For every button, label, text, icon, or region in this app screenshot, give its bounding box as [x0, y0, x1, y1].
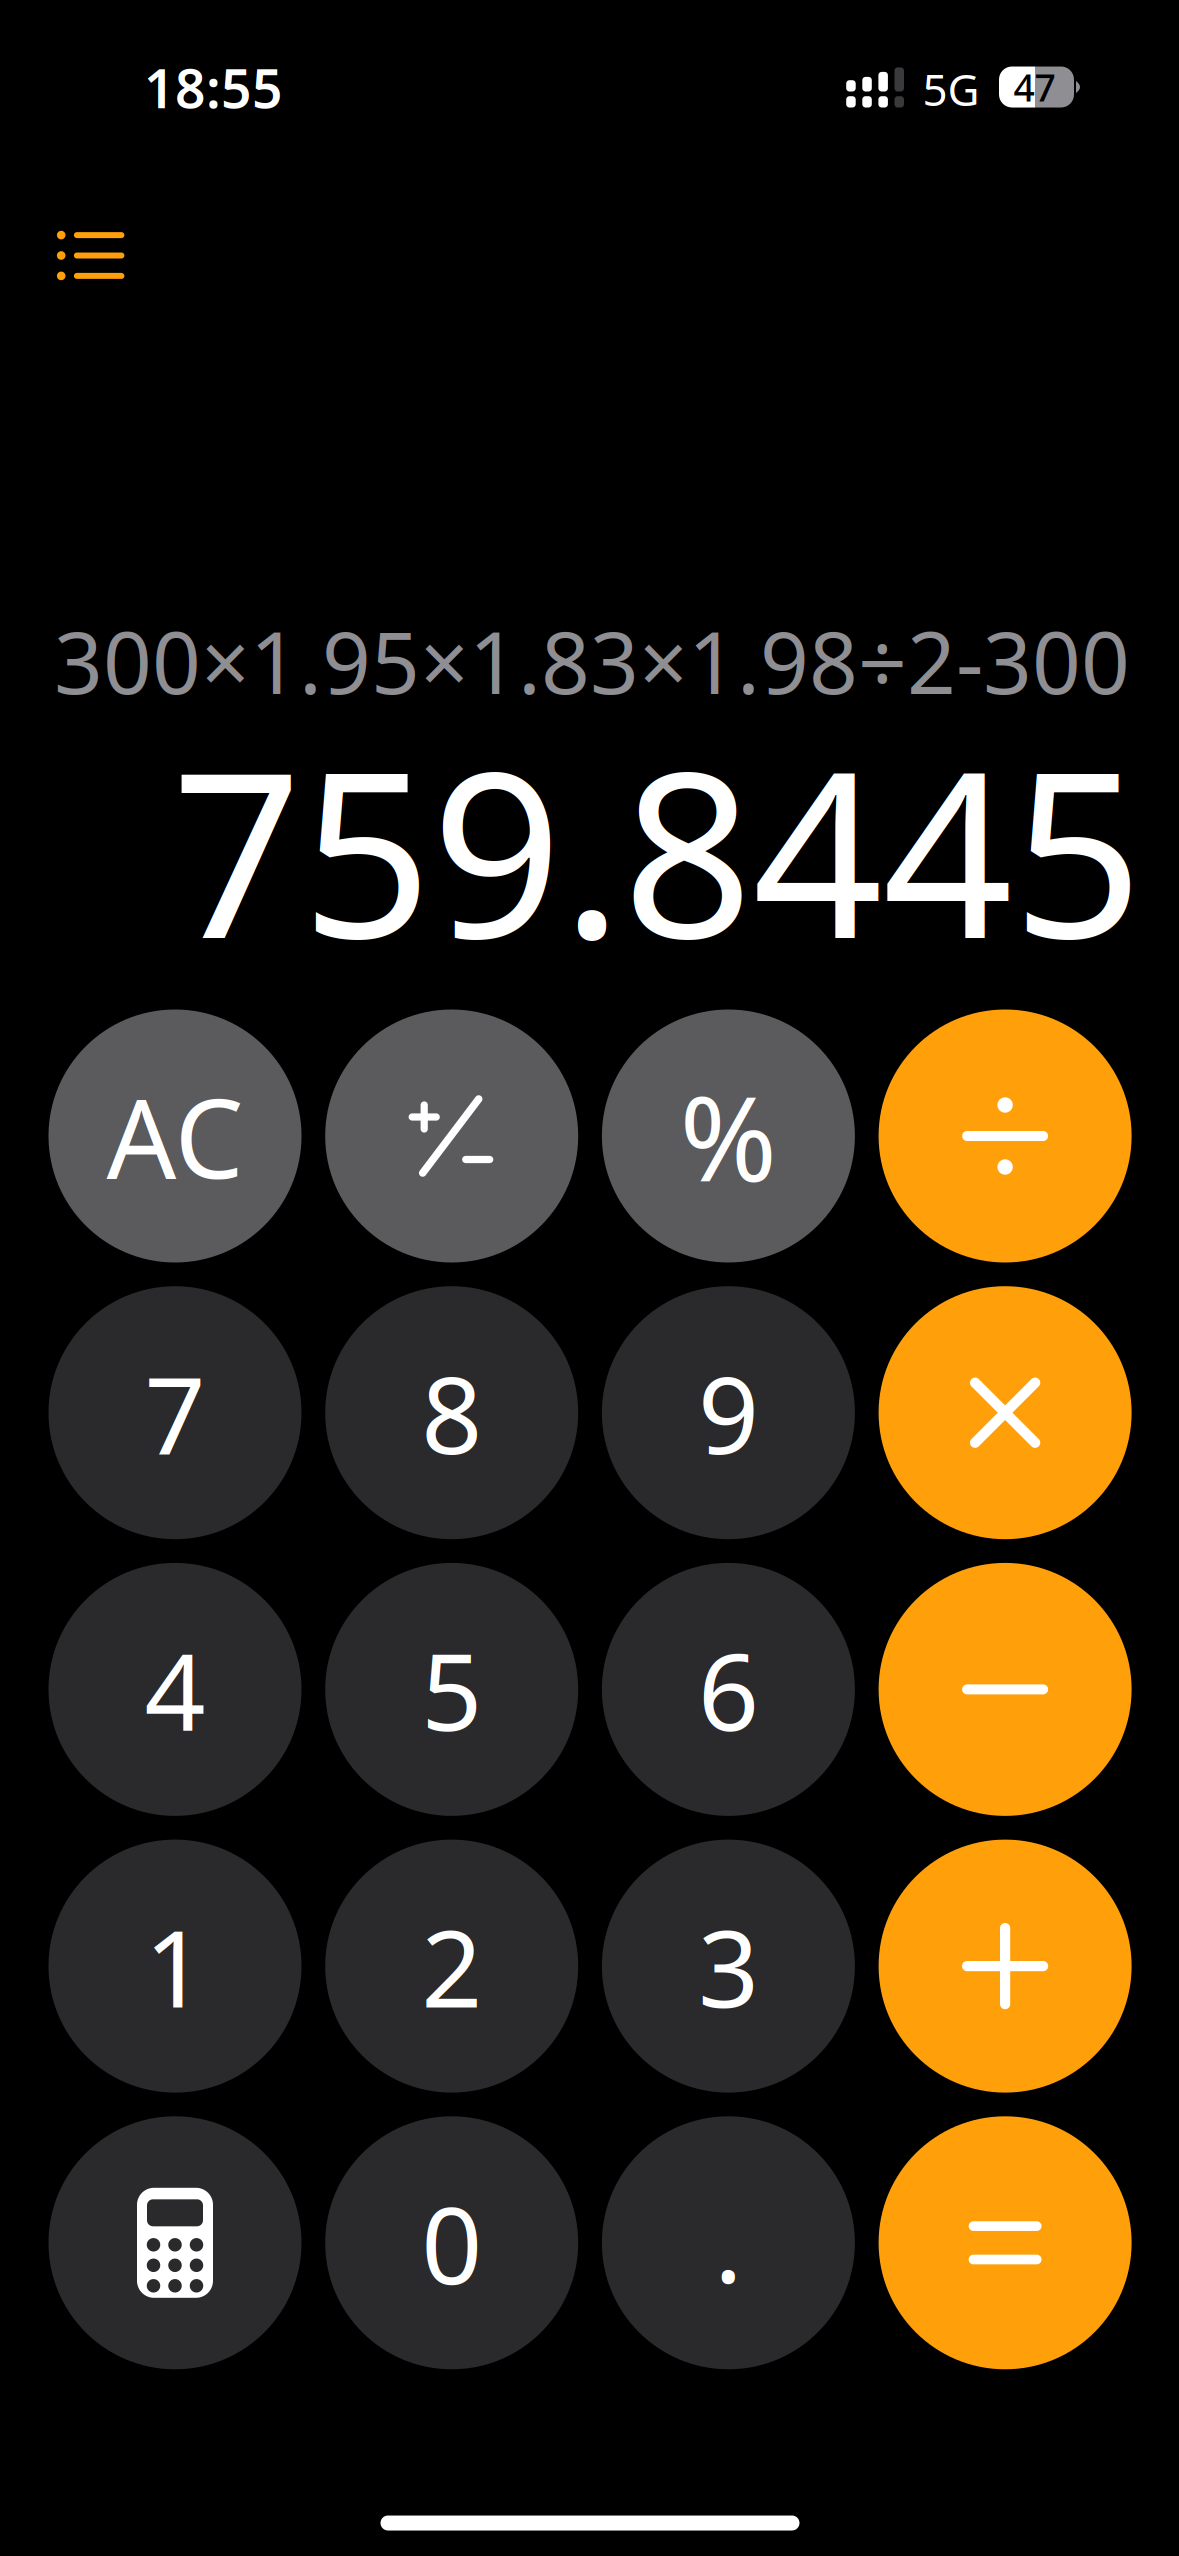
staticText: 2	[421, 1895, 482, 2037]
button[interactable]: 2	[325, 1840, 578, 2093]
button[interactable]: Equals	[879, 2116, 1132, 2369]
staticText: AC	[106, 1063, 243, 1209]
button[interactable]: 7	[48, 1286, 301, 1539]
button[interactable]: Calculator keypad	[48, 2116, 301, 2369]
staticText: 5	[421, 1619, 482, 1760]
staticText: 18:55	[144, 52, 283, 123]
button[interactable]: 5	[325, 1563, 578, 1816]
button[interactable]: 6	[602, 1563, 855, 1816]
button[interactable]: Multiply	[879, 1286, 1132, 1539]
staticText: 759.8445	[171, 698, 1142, 1001]
button[interactable]: %	[602, 1009, 855, 1262]
staticText: 7	[144, 1342, 205, 1483]
staticText: 3	[698, 1895, 759, 2037]
staticText: 4	[144, 1619, 205, 1760]
button[interactable]: History	[40, 190, 170, 320]
staticText: 6	[698, 1619, 759, 1760]
button[interactable]: 9	[602, 1286, 855, 1539]
button[interactable]: Add	[879, 1840, 1132, 2093]
button[interactable]: 4	[48, 1563, 301, 1816]
button[interactable]: 0	[325, 2116, 578, 2369]
staticText: 1	[144, 1895, 205, 2037]
button[interactable]: Divide	[879, 1009, 1132, 1262]
button[interactable]: 8	[325, 1286, 578, 1539]
staticText: %	[679, 1058, 777, 1214]
button[interactable]: Subtract	[879, 1563, 1132, 1816]
staticText: .	[714, 2171, 743, 2313]
staticText: 0	[421, 2172, 482, 2314]
staticText: 9	[698, 1342, 759, 1483]
button[interactable]: 3	[602, 1840, 855, 2093]
button[interactable]: AC	[48, 1009, 301, 1262]
button[interactable]: 1	[48, 1840, 301, 2093]
staticText: 300×1.95×1.83×1.98÷2-300	[54, 604, 1130, 718]
button[interactable]: Toggle sign	[325, 1009, 578, 1262]
button[interactable]: .	[602, 2116, 855, 2369]
staticText: 8	[421, 1342, 482, 1483]
staticText: 47	[1013, 62, 1055, 112]
staticText: 5G	[922, 60, 979, 118]
